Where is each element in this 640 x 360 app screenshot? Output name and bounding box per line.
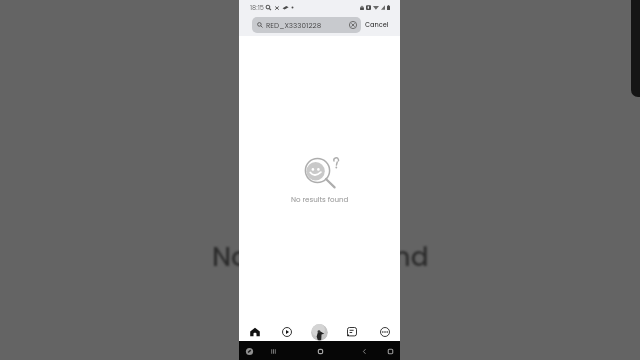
button[interactable]: Assistant (240, 342, 258, 360)
staticText: RED_X33301228 (266, 20, 322, 30)
staticText: 18:15 (250, 3, 264, 12)
staticText: Cancel (365, 20, 389, 29)
staticText: No results found (212, 238, 429, 275)
button[interactable]: Home (244, 321, 266, 343)
button[interactable]: Screenshot (381, 342, 399, 360)
button[interactable]: Messages (341, 321, 363, 343)
staticText: No results found (291, 195, 349, 205)
button[interactable]: Home (311, 342, 329, 360)
button[interactable]: Cancel (363, 17, 391, 32)
button[interactable]: Profile (311, 324, 328, 341)
button[interactable]: Back (355, 342, 373, 360)
button[interactable]: RED_X33301228 (252, 17, 361, 33)
other: Clear search (349, 21, 357, 29)
button[interactable]: More (374, 321, 396, 343)
button[interactable]: Recents (264, 342, 282, 360)
button[interactable]: Reels (276, 321, 298, 343)
